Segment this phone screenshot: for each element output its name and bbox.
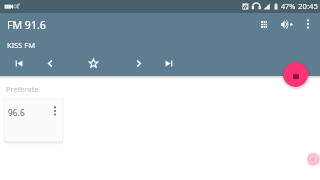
button[interactable]: Favourite (84, 54, 102, 72)
button[interactable]: More options (299, 15, 317, 33)
button[interactable]: Next station (160, 54, 178, 72)
staticText: 20:45 (298, 1, 318, 12)
staticText: Preferate (6, 84, 39, 94)
button[interactable]: Volume (278, 15, 296, 33)
staticText: FM 91.6 (7, 18, 46, 32)
staticText: KISS FM (7, 40, 36, 50)
button[interactable]: Seek up (130, 54, 148, 72)
button[interactable]: Stations list (255, 15, 273, 33)
button[interactable]: Stop (283, 62, 308, 87)
button[interactable]: Seek down (41, 54, 59, 72)
button[interactable]: More (47, 103, 62, 119)
staticText: 96.6 (8, 107, 25, 119)
staticText: 47% (281, 1, 296, 11)
button[interactable]: 96.6 (5, 97, 62, 141)
button[interactable]: Previous station (10, 54, 28, 72)
